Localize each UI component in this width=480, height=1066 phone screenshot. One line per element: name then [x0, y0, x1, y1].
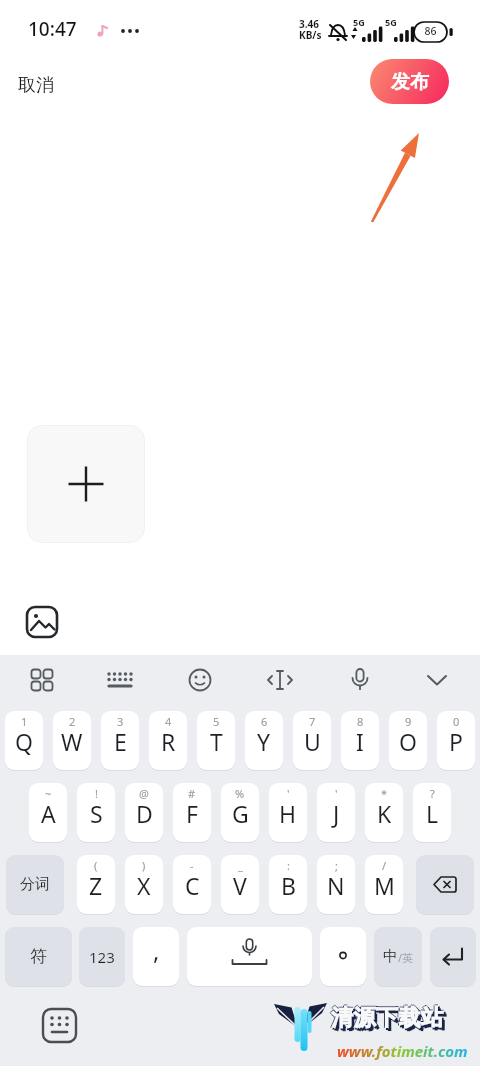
button[interactable]: 123: [79, 927, 125, 986]
staticText: O: [399, 726, 417, 757]
staticText: S: [90, 798, 103, 829]
staticText: @: [139, 786, 149, 801]
staticText: :: [287, 858, 290, 873]
button[interactable]: ?: [413, 783, 451, 842]
button[interactable]: -: [173, 855, 211, 914]
button[interactable]: 5: [197, 711, 235, 770]
staticText: T: [210, 726, 223, 757]
button[interactable]: [27, 425, 145, 543]
button[interactable]: 2: [53, 711, 91, 770]
staticText: B: [281, 870, 296, 901]
staticText: Y: [257, 726, 271, 757]
staticText: 1: [21, 714, 28, 729]
staticText: A: [41, 798, 56, 829]
staticText: 2: [69, 714, 76, 729]
button[interactable]: %: [221, 783, 259, 842]
button[interactable]: [178, 658, 222, 702]
staticText: 清源下载站: [331, 1004, 444, 1032]
button[interactable]: 9: [389, 711, 427, 770]
staticText: J: [333, 798, 340, 829]
staticText: 4: [165, 714, 172, 729]
staticText: W: [61, 726, 83, 757]
button[interactable]: 7: [293, 711, 331, 770]
button[interactable]: [23, 603, 61, 641]
button[interactable]: 4: [149, 711, 187, 770]
button[interactable]: 分词: [6, 855, 64, 914]
button[interactable]: _: [221, 855, 259, 914]
button[interactable]: 发布: [370, 59, 449, 104]
button[interactable]: [320, 927, 366, 986]
button[interactable]: 中: [374, 927, 422, 986]
button[interactable]: ~: [29, 783, 67, 842]
staticText: %: [235, 786, 245, 801]
staticText: 5: [213, 714, 220, 729]
button[interactable]: /: [365, 855, 403, 914]
button[interactable]: [38, 1004, 82, 1048]
button[interactable]: ,: [133, 927, 179, 986]
staticText: G: [232, 798, 249, 829]
staticText: /英: [398, 950, 414, 965]
staticText: ~: [45, 786, 52, 801]
staticText: Z: [89, 870, 103, 901]
button[interactable]: [98, 658, 142, 702]
button[interactable]: #: [173, 783, 211, 842]
button[interactable]: ): [125, 855, 163, 914]
button[interactable]: 0: [437, 711, 475, 770]
staticText: 3.46: [299, 17, 319, 31]
staticText: 7: [309, 714, 316, 729]
button[interactable]: 1: [5, 711, 43, 770]
button[interactable]: [187, 927, 312, 986]
button[interactable]: ': [269, 783, 307, 842]
staticText: Q: [15, 726, 33, 757]
button[interactable]: :: [269, 855, 307, 914]
button[interactable]: ': [317, 783, 355, 842]
staticText: 0: [453, 714, 460, 729]
staticText: ': [335, 786, 338, 801]
staticText: R: [161, 726, 176, 757]
staticText: 清源下载站: [330, 1004, 443, 1032]
staticText: 清源下载站: [331, 1003, 444, 1031]
button[interactable]: @: [125, 783, 163, 842]
staticText: 取消: [18, 74, 54, 97]
staticText: www.fotimeit.com: [337, 1041, 468, 1061]
staticText: F: [186, 798, 198, 829]
staticText: 清源下载站: [334, 1007, 447, 1035]
button[interactable]: 6: [245, 711, 283, 770]
staticText: 发布: [391, 70, 429, 94]
staticText: 清源下载站: [332, 1006, 445, 1034]
button[interactable]: ;: [317, 855, 355, 914]
staticText: 3: [117, 714, 124, 729]
button[interactable]: !: [77, 783, 115, 842]
button[interactable]: 取消: [10, 66, 62, 105]
staticText: 8: [357, 714, 364, 729]
staticText: 86: [414, 24, 447, 38]
staticText: ': [287, 786, 290, 801]
button[interactable]: [338, 658, 382, 702]
button[interactable]: 3: [101, 711, 139, 770]
staticText: H: [279, 798, 297, 829]
staticText: V: [233, 870, 247, 901]
button[interactable]: 符: [5, 927, 72, 986]
staticText: I: [356, 726, 364, 757]
button[interactable]: [430, 927, 476, 986]
button[interactable]: [416, 855, 474, 914]
staticText: /: [382, 858, 387, 873]
staticText: ;: [335, 858, 338, 873]
button[interactable]: (: [77, 855, 115, 914]
staticText: !: [95, 786, 98, 801]
staticText: 分词: [20, 875, 50, 894]
staticText: 5G: [385, 16, 397, 28]
staticText: 123: [89, 947, 115, 967]
staticText: L: [426, 798, 439, 829]
staticText: *: [381, 786, 388, 801]
staticText: 6: [261, 714, 268, 729]
staticText: 中: [383, 947, 398, 966]
button[interactable]: [415, 658, 459, 702]
button[interactable]: *: [365, 783, 403, 842]
button[interactable]: [20, 658, 64, 702]
button[interactable]: 8: [341, 711, 379, 770]
button[interactable]: [258, 658, 302, 702]
staticText: ,: [153, 934, 160, 967]
staticText: 清源下载站: [333, 1005, 446, 1033]
staticText: (: [94, 858, 98, 873]
